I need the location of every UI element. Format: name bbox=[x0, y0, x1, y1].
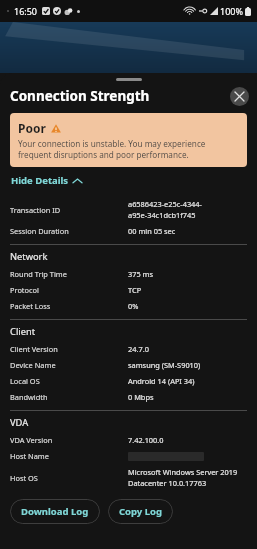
staticText: Bandwidth bbox=[10, 392, 48, 402]
staticText: Session Duration bbox=[10, 226, 69, 236]
staticText: Host Name bbox=[10, 451, 49, 461]
staticText: Connection Strength bbox=[10, 87, 150, 105]
staticText: samsung (SM-S9010) bbox=[128, 360, 247, 370]
staticText: 24.7.0 bbox=[128, 344, 247, 354]
button[interactable]: Download Log bbox=[10, 499, 100, 524]
staticText: Your connection is unstable. You may exp… bbox=[18, 138, 239, 160]
staticText: Client Version bbox=[10, 344, 58, 354]
button[interactable]: Hide Details bbox=[10, 172, 83, 189]
staticText: 0 Mbps bbox=[128, 392, 247, 402]
staticText: Round Trip Time bbox=[10, 269, 67, 279]
staticText: Android 14 (API 34) bbox=[128, 376, 247, 386]
staticText: Protocol bbox=[10, 285, 39, 295]
staticText: Transaction ID bbox=[10, 205, 61, 215]
staticText: 100% bbox=[220, 5, 243, 17]
staticText: 16:50 bbox=[14, 5, 38, 17]
staticText: Copy Log bbox=[119, 505, 162, 518]
staticText: Download Log bbox=[21, 505, 89, 518]
staticText: Device Name bbox=[10, 360, 56, 370]
staticText: Host OS bbox=[10, 473, 38, 483]
staticText: Client bbox=[10, 325, 36, 338]
staticText: 7.42.100.0 bbox=[128, 435, 247, 445]
button[interactable]: Close bbox=[230, 87, 249, 106]
staticText: 00 min 05 sec bbox=[128, 226, 247, 236]
staticText: Packet Loss bbox=[10, 301, 51, 311]
staticText: a6586423-e25c-4344-a95e-34c1dcb1f745 bbox=[128, 199, 247, 220]
staticText: Hide Details bbox=[11, 174, 69, 187]
staticText: VDA Version bbox=[10, 435, 53, 445]
staticText: TCP bbox=[128, 285, 247, 295]
staticText: Local OS bbox=[10, 376, 40, 386]
button[interactable]: Copy Log bbox=[108, 499, 173, 524]
staticText: Poor bbox=[18, 120, 46, 136]
staticText: VDA bbox=[10, 416, 29, 429]
staticText: Network bbox=[10, 250, 48, 263]
staticText: 375 ms bbox=[128, 269, 247, 279]
staticText: Microsoft Windows Server 2019 Datacenter… bbox=[128, 467, 247, 488]
staticText: 0% bbox=[128, 301, 247, 311]
